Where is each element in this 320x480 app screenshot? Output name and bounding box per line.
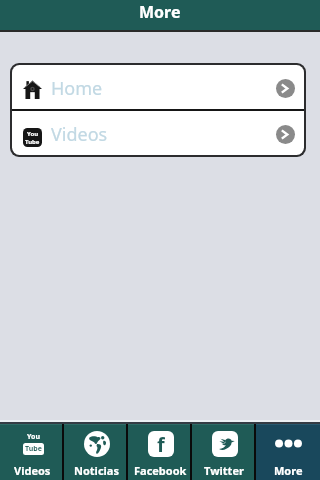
staticText: Noticias bbox=[74, 463, 119, 478]
staticText: Videos bbox=[51, 122, 108, 147]
staticText: More bbox=[139, 1, 181, 23]
staticText: Videos bbox=[14, 463, 51, 478]
staticText: Facebook bbox=[134, 463, 187, 478]
button[interactable]: More bbox=[256, 424, 320, 480]
button[interactable]: Noticias bbox=[64, 424, 128, 480]
staticText: Home bbox=[51, 76, 103, 101]
button[interactable]: You bbox=[12, 111, 304, 155]
staticText: Twitter bbox=[204, 463, 244, 478]
button[interactable]: Twitter bbox=[192, 424, 256, 480]
staticText: You bbox=[27, 432, 40, 442]
staticText: Tube bbox=[25, 444, 42, 454]
button[interactable]: f bbox=[128, 424, 192, 480]
button[interactable]: You bbox=[0, 424, 64, 480]
staticText: f bbox=[157, 431, 165, 457]
button[interactable]: Home bbox=[12, 65, 304, 109]
staticText: You bbox=[27, 130, 39, 138]
other: Open bbox=[276, 79, 295, 98]
other: Open bbox=[276, 125, 295, 144]
staticText: Tube bbox=[25, 138, 40, 146]
staticText: More bbox=[274, 463, 303, 478]
